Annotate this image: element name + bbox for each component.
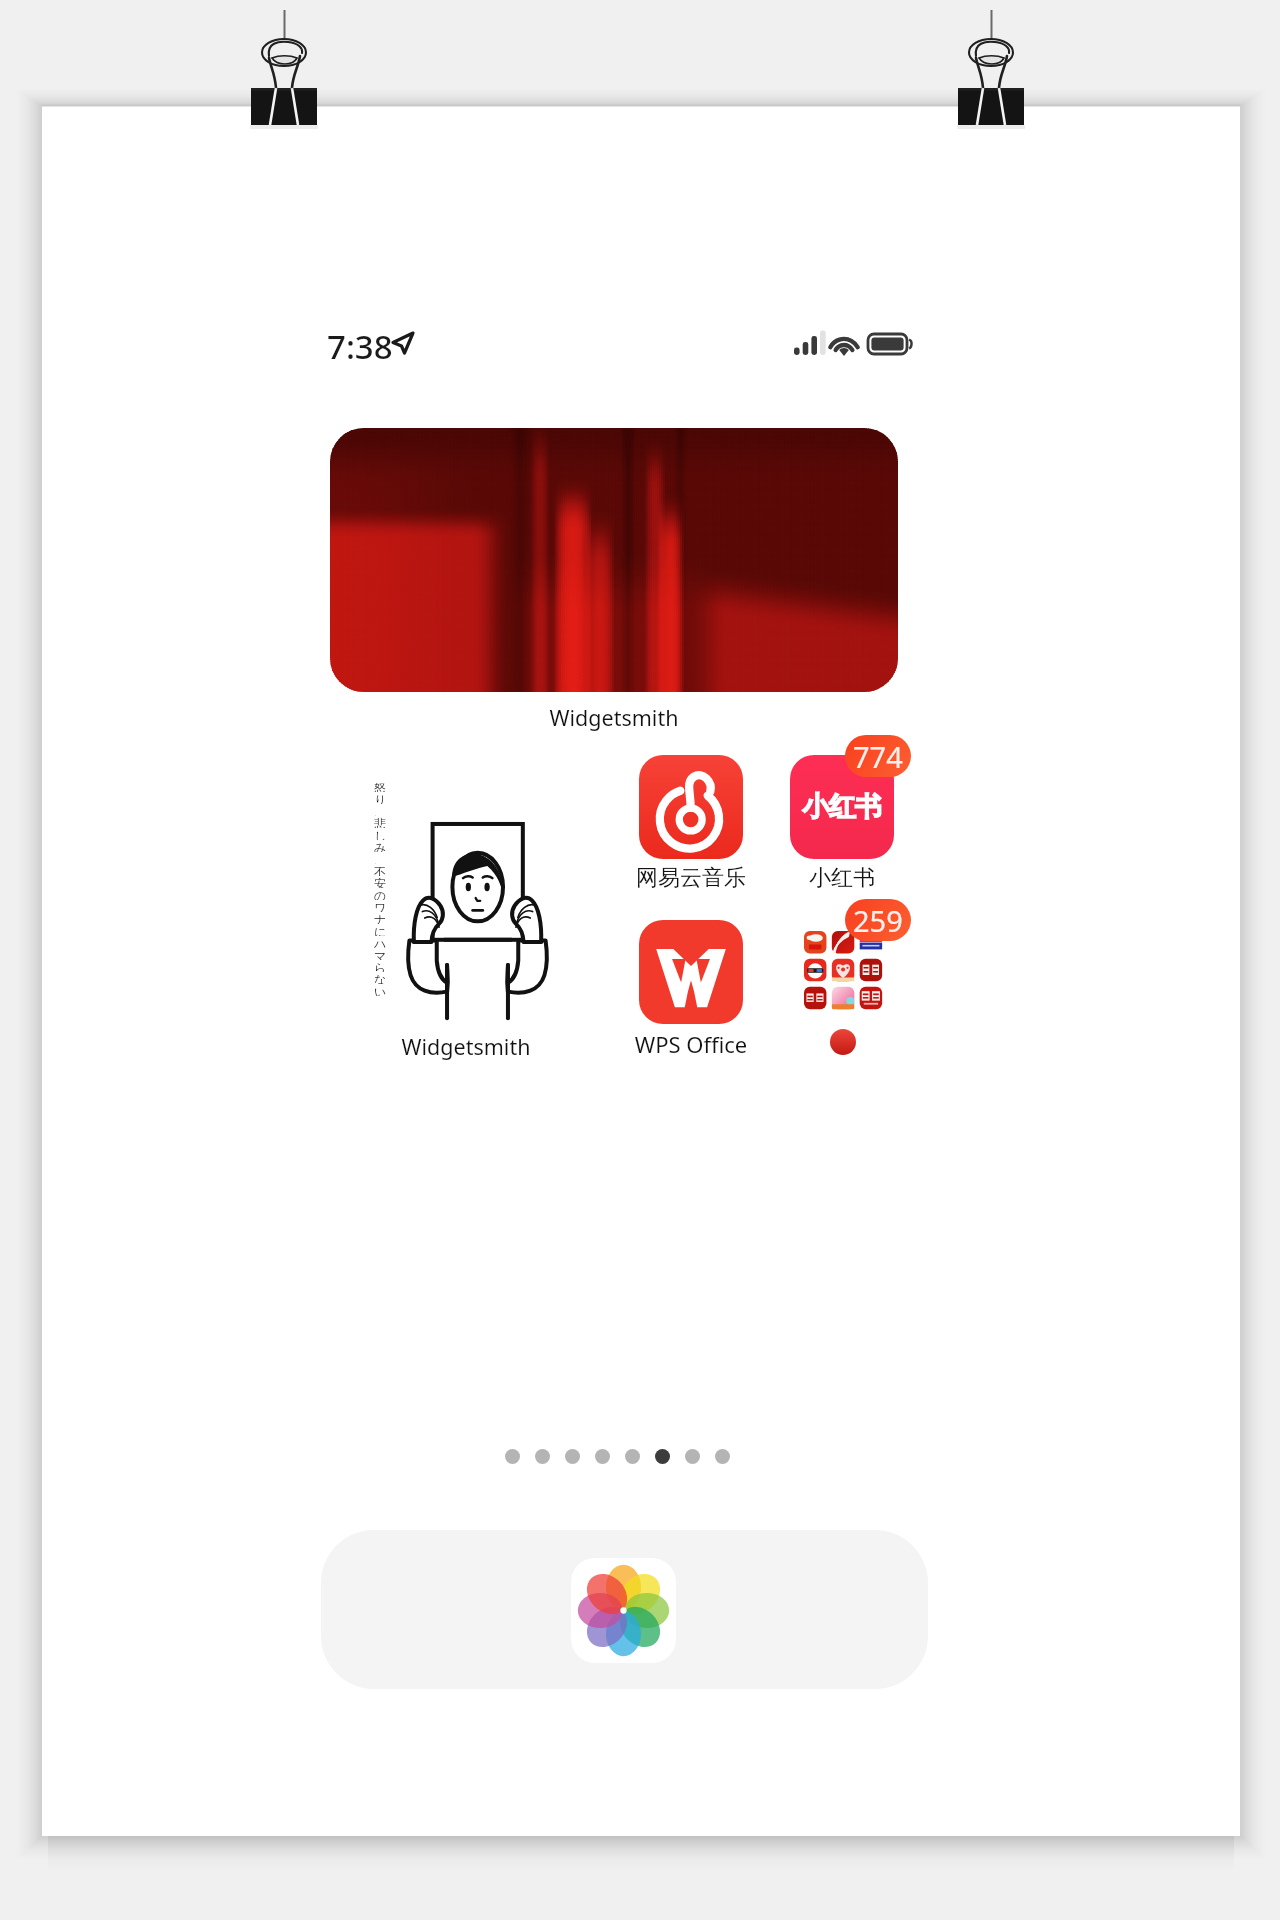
button[interactable]: Widgetsmith photo widget (330, 428, 898, 692)
button[interactable]: Photos (571, 1558, 676, 1663)
staticText: Widgetsmith (330, 703, 898, 732)
staticText: 7:38 (327, 324, 393, 369)
staticText: Widgetsmith (351, 1032, 581, 1061)
button[interactable]: 小红书 (770, 755, 914, 892)
button[interactable]: Page 6 (655, 1449, 670, 1464)
staticText: 怒 (374, 780, 386, 792)
staticText: 悲 (374, 816, 386, 828)
staticText: ハ (374, 936, 387, 948)
staticText: 不 (374, 864, 386, 876)
button[interactable]: Page 8 (715, 1449, 730, 1464)
button[interactable]: Page 4 (595, 1449, 610, 1464)
staticText: 259 (853, 901, 903, 940)
staticText: い (374, 984, 387, 996)
staticText: ナ (374, 912, 387, 924)
staticText: 小红书 (803, 790, 881, 824)
staticText: ワ (374, 900, 387, 912)
button[interactable]: Page 3 (565, 1449, 580, 1464)
button[interactable]: Folder (804, 931, 882, 1009)
staticText: マ (374, 948, 387, 960)
button[interactable]: Page 5 (625, 1449, 640, 1464)
button[interactable]: Page 2 (535, 1449, 550, 1464)
staticText: 网易云音乐 (619, 864, 763, 892)
staticText: 774 (853, 737, 903, 776)
button[interactable]: 网易云音乐 (619, 755, 763, 892)
staticText: み (374, 840, 387, 852)
button[interactable]: WPS Office (609, 920, 773, 1059)
staticText: に (374, 924, 387, 936)
button[interactable]: Page 7 (685, 1449, 700, 1464)
staticText: WPS Office (609, 1029, 773, 1059)
staticText: の (374, 888, 387, 900)
staticText: り (374, 792, 387, 804)
button[interactable]: Page 1 (505, 1449, 520, 1464)
button[interactable]: Widgetsmith illustration widget (406, 817, 549, 1022)
staticText: な (374, 972, 387, 984)
staticText: ら (374, 960, 387, 972)
staticText: 小红书 (770, 864, 914, 892)
staticText: 安 (374, 876, 386, 888)
staticText: し (374, 828, 387, 840)
